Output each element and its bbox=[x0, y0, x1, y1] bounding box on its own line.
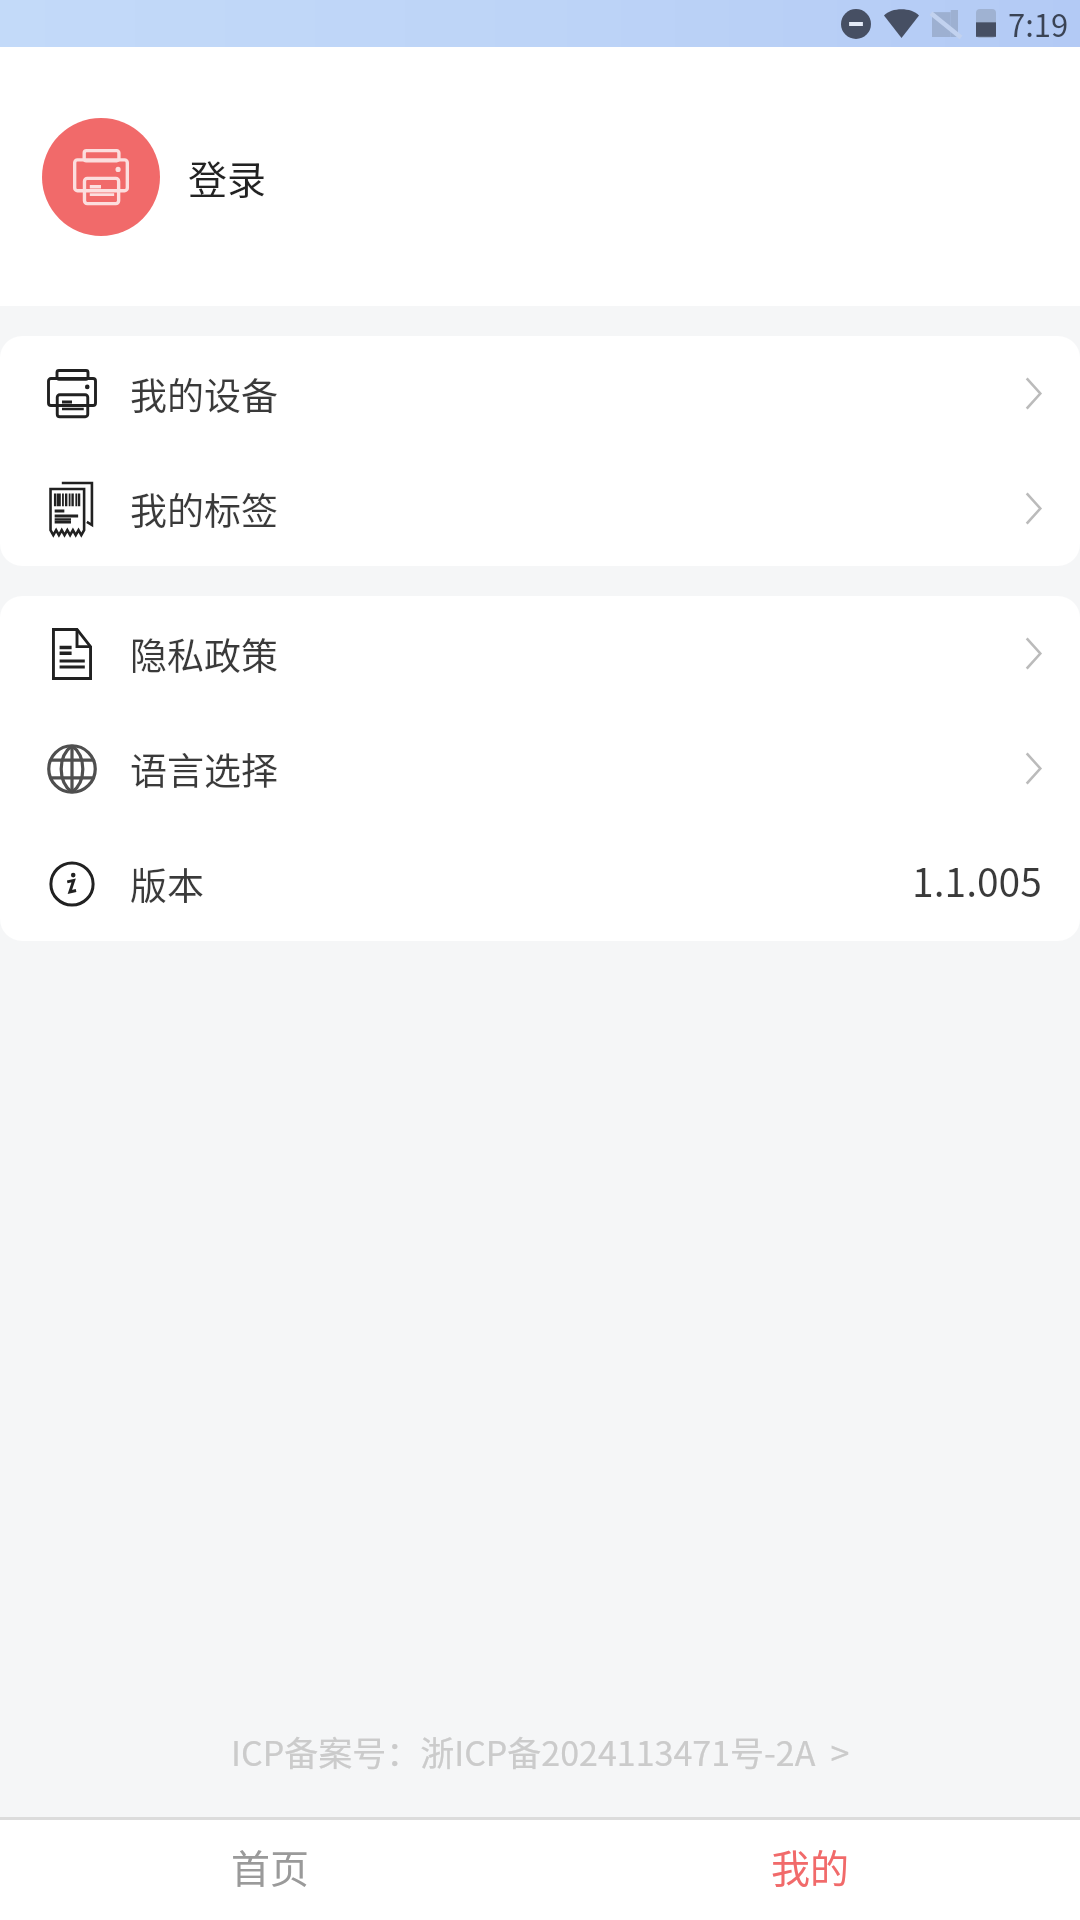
staticText: 语言选择 bbox=[130, 742, 278, 796]
staticText: ICP备案号：浙ICP备2024113471号-2A > bbox=[231, 1727, 850, 1776]
button[interactable]: 语言选择 bbox=[0, 711, 1080, 826]
staticText: 登录 bbox=[188, 149, 267, 205]
button[interactable]: 首页 bbox=[0, 1817, 540, 1920]
staticText: 我的设备 bbox=[130, 367, 278, 421]
button[interactable]: 我的 bbox=[540, 1817, 1080, 1920]
staticText: 我的 bbox=[771, 1838, 850, 1894]
staticText: 7:19 bbox=[1008, 1, 1069, 46]
button[interactable]: 我的设备 bbox=[0, 336, 1080, 451]
button[interactable]: ICP备案号 bbox=[0, 1703, 1080, 1799]
staticText: 我的标签 bbox=[130, 482, 278, 536]
button[interactable]: 登录 bbox=[0, 47, 1080, 306]
staticText: 首页 bbox=[231, 1838, 310, 1894]
button[interactable]: 版本 bbox=[0, 826, 1080, 941]
staticText: 隐私政策 bbox=[130, 627, 278, 681]
staticText: 版本 bbox=[130, 857, 204, 911]
staticText: 1.1.005 bbox=[912, 852, 1042, 908]
button[interactable]: 隐私政策 bbox=[0, 596, 1080, 711]
button[interactable]: 我的标签 bbox=[0, 451, 1080, 566]
